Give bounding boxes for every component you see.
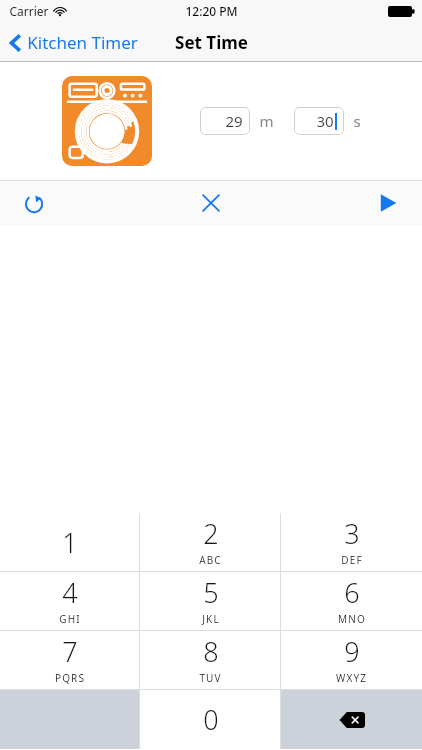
staticText: Set Time	[175, 31, 248, 54]
staticText: MNO	[338, 612, 366, 626]
staticText: 0	[203, 701, 219, 738]
staticText: 1	[62, 524, 78, 561]
button[interactable]: Start	[364, 181, 412, 225]
staticText: GHI	[59, 612, 81, 626]
button[interactable]: 29	[200, 107, 250, 135]
button[interactable]: 4	[0, 572, 140, 631]
staticText: Kitchen Timer	[27, 31, 138, 54]
staticText: DEF	[341, 553, 363, 567]
other: Washing machine	[62, 76, 152, 166]
button[interactable]: Kitchen Timer	[0, 27, 148, 58]
button[interactable]: Delete	[281, 690, 422, 749]
staticText: 2	[203, 515, 219, 552]
button[interactable]: 2	[140, 513, 281, 572]
staticText: 4	[62, 574, 78, 611]
button[interactable]: 7	[0, 631, 140, 690]
staticText: 29	[225, 111, 243, 131]
button[interactable]: 30	[294, 107, 344, 135]
staticText: PQRS	[55, 671, 85, 685]
staticText: 7	[62, 633, 78, 670]
staticText: WXYZ	[336, 671, 367, 685]
button[interactable]: 0	[140, 690, 281, 749]
button[interactable]: Clear	[187, 181, 235, 225]
staticText: s	[353, 111, 361, 131]
staticText: Carrier	[9, 3, 49, 19]
staticText: 6	[344, 574, 360, 611]
button[interactable]: 6	[281, 572, 422, 631]
button[interactable]: Reset	[10, 181, 58, 225]
staticText: 9	[344, 633, 360, 670]
staticText: 5	[203, 574, 219, 611]
staticText: JKL	[202, 612, 220, 626]
button[interactable]: 8	[140, 631, 281, 690]
staticText: 30	[316, 111, 334, 131]
button[interactable]: 9	[281, 631, 422, 690]
button[interactable]: 1	[0, 513, 140, 572]
staticText: TUV	[199, 671, 222, 685]
staticText: ABC	[199, 553, 222, 567]
button[interactable]: 5	[140, 572, 281, 631]
staticText: 12:20 PM	[185, 3, 238, 19]
staticText: 8	[203, 633, 219, 670]
button[interactable]: 3	[281, 513, 422, 572]
staticText: 3	[344, 515, 360, 552]
staticText: m	[259, 111, 274, 131]
